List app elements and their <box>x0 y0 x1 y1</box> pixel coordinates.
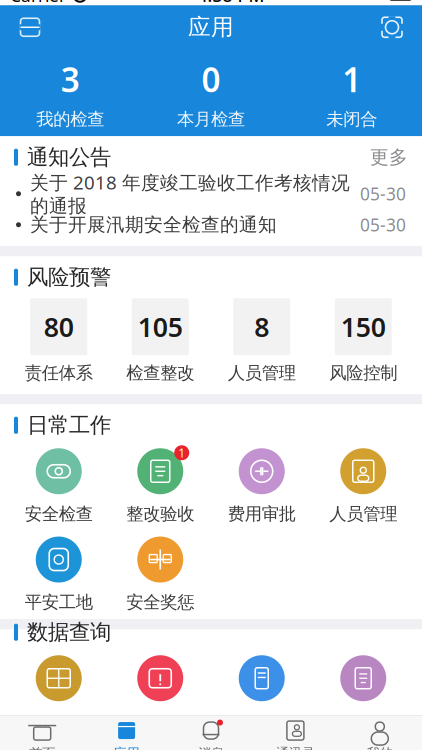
button[interactable]: 8 <box>211 298 312 383</box>
button[interactable]: 3 <box>0 57 141 130</box>
staticText: 通讯录 <box>276 745 315 750</box>
staticText: 应用 <box>188 13 234 41</box>
button[interactable]: 1 <box>109 448 211 524</box>
button[interactable] <box>211 655 312 733</box>
button[interactable]: 安全检查 <box>8 448 109 524</box>
staticText: 检查整改 <box>126 362 194 383</box>
staticText: 我的 <box>367 745 393 750</box>
staticText: 0 <box>201 57 220 101</box>
staticText: 首页 <box>29 745 55 750</box>
staticText: 105 <box>138 309 183 344</box>
button[interactable] <box>312 655 414 733</box>
button[interactable] <box>109 655 211 733</box>
staticText: 关于开展汛期安全检查的通知 <box>30 213 277 236</box>
button[interactable]: 80 <box>8 298 109 383</box>
staticText: 整改验收 <box>126 503 194 524</box>
staticText: 费用审批 <box>228 503 296 524</box>
button[interactable]: 应用 <box>84 716 169 750</box>
staticText: 更多 <box>370 146 408 169</box>
staticText: 未闭合 <box>326 108 377 130</box>
button[interactable]: 人员管理 <box>312 448 414 524</box>
staticText: 3 <box>61 57 80 101</box>
staticText: 80 <box>44 309 74 344</box>
staticText: Carrier <box>10 0 66 7</box>
button[interactable]: Focus <box>370 8 414 46</box>
button[interactable]: 平安工地 <box>8 536 109 613</box>
staticText: 安全奖惩 <box>126 591 194 613</box>
button[interactable]: 安全奖惩 <box>109 536 211 613</box>
staticText: 150 <box>341 309 386 344</box>
staticText: 05-30 <box>360 182 406 205</box>
button[interactable]: 我的 <box>338 716 422 750</box>
staticText: 数据查询 <box>27 619 111 645</box>
staticText: 我的检查 <box>36 108 104 130</box>
staticText: 1 <box>342 57 361 101</box>
staticText: 本月检查 <box>177 108 245 130</box>
button[interactable]: 首页 <box>0 716 84 750</box>
button[interactable]: 0 <box>141 57 281 130</box>
staticText: 1 <box>178 445 185 461</box>
button[interactable]: 通讯录 <box>253 716 338 750</box>
button[interactable]: 消息 <box>169 716 253 750</box>
staticText: 责任体系 <box>25 362 93 383</box>
button[interactable]: 1 <box>281 57 422 130</box>
staticText: 05-30 <box>360 213 406 236</box>
button[interactable] <box>8 655 109 733</box>
staticText: 消息 <box>198 745 224 750</box>
staticText: 日常工作 <box>27 412 111 438</box>
staticText: 安全检查 <box>25 503 93 524</box>
staticText: 通知公告 <box>27 144 111 170</box>
button[interactable]: 105 <box>109 298 211 383</box>
button[interactable]: 关于 2018 年度竣工验收工作考核情况的通报 <box>0 178 422 209</box>
staticText: 风险预警 <box>27 264 111 290</box>
staticText: 风险控制 <box>329 362 397 383</box>
button[interactable]: 关于开展汛期安全检查的通知 <box>0 209 422 240</box>
staticText: 4:38 PM <box>197 0 264 7</box>
button[interactable]: 150 <box>312 298 414 383</box>
staticText: 应用 <box>114 745 140 750</box>
button[interactable]: 费用审批 <box>211 448 312 524</box>
staticText: 8 <box>254 309 269 344</box>
staticText: 人员管理 <box>228 362 296 383</box>
staticText: 平安工地 <box>25 591 93 613</box>
staticText: 关于 2018 年度竣工验收工作考核情况的通报 <box>30 170 350 218</box>
staticText: 人员管理 <box>329 503 397 524</box>
button[interactable]: Scan <box>8 8 52 46</box>
button[interactable]: 更多 <box>370 146 408 169</box>
